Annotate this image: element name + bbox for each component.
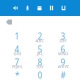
staticText: DEF	[59, 38, 66, 43]
staticText	[62, 77, 63, 80]
button[interactable]: 0	[28, 70, 51, 80]
staticText: JKL	[37, 51, 43, 56]
staticText: 1	[14, 31, 19, 42]
button[interactable]: #	[51, 70, 74, 80]
button[interactable]: Keypad	[33, 1, 45, 15]
staticText: #	[60, 70, 65, 80]
button[interactable]: Mute	[21, 1, 33, 15]
staticText: 3	[60, 31, 65, 42]
staticText: 2	[37, 31, 42, 42]
staticText: *	[15, 70, 19, 80]
button[interactable]: 1	[5, 31, 28, 44]
staticText: WXYZ	[57, 64, 68, 69]
button[interactable]: 7	[5, 57, 28, 70]
button[interactable]: 8	[28, 57, 51, 70]
staticText: 9	[60, 57, 65, 68]
button[interactable]: 4	[5, 44, 28, 57]
button[interactable]: Delete	[2, 16, 16, 27]
button[interactable]: 9	[51, 57, 74, 70]
staticText: PQRS	[12, 64, 22, 69]
staticText: 5	[37, 44, 42, 55]
staticText: 7	[14, 57, 19, 68]
button[interactable]: Hold	[45, 1, 57, 15]
button[interactable]: *	[5, 70, 28, 80]
staticText: ABC	[35, 38, 44, 43]
button[interactable]: 2	[28, 31, 51, 44]
staticText: +	[39, 77, 41, 80]
staticText: MNO	[58, 51, 68, 56]
staticText: 4	[14, 44, 19, 55]
staticText: GHI	[13, 51, 20, 56]
button[interactable]: 5	[28, 44, 51, 57]
staticText: 0	[37, 70, 42, 80]
staticText: 6	[60, 44, 65, 55]
button[interactable]: 3	[51, 31, 74, 44]
staticText: 8	[37, 57, 42, 68]
button[interactable]: 6	[51, 44, 74, 57]
staticText: TUV	[36, 64, 44, 69]
button[interactable]: Transfer	[57, 1, 69, 15]
button[interactable]: Speaker	[9, 1, 21, 15]
staticText	[16, 38, 17, 43]
